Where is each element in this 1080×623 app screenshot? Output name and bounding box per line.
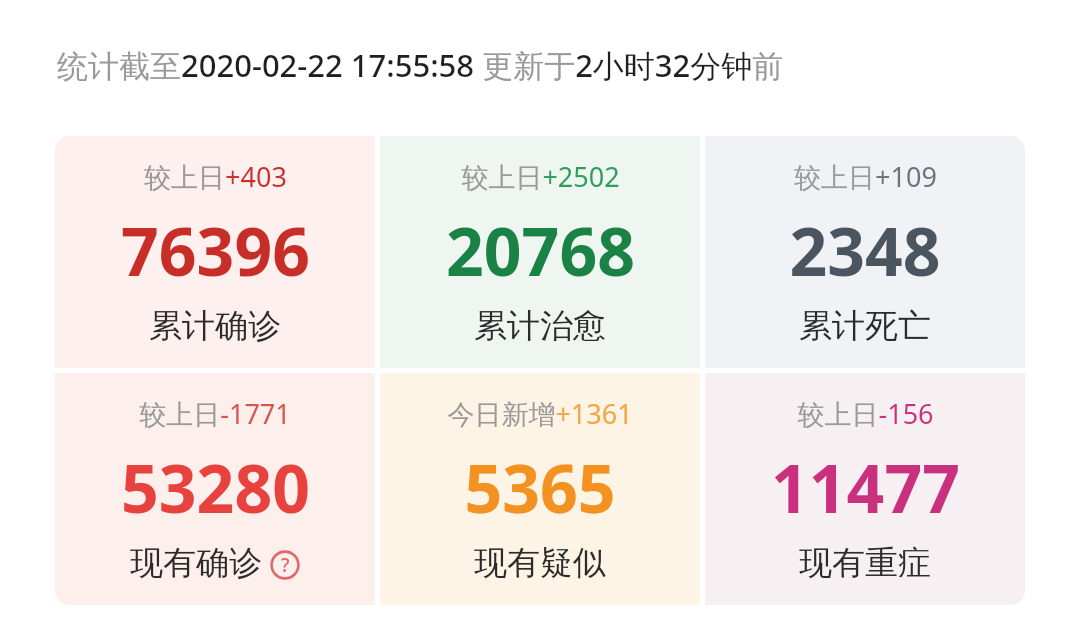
staticText: 5365 [464,442,616,532]
staticText: 现有确诊 [130,542,262,584]
staticText: 现有疑似 [474,542,606,584]
button[interactable]: 说明 [270,550,300,580]
staticText: ? [281,552,290,578]
staticText: 今日新增+1361 [447,395,633,432]
staticText: 11477 [771,442,960,532]
staticText: 较上日+2502 [461,158,620,195]
button[interactable]: 较上日-156 [705,373,1025,605]
staticText: 较上日-156 [797,395,934,432]
staticText: 累计确诊 [149,305,281,347]
staticText: 较上日-1771 [139,395,291,432]
staticText: 76396 [121,205,310,295]
staticText: 统计截至2020-02-22 17:55:58 更新于2小时32分钟前 [57,44,784,86]
staticText: 现有重症 [799,542,931,584]
staticText: 较上日+109 [794,158,937,195]
staticText: 累计死亡 [799,305,931,347]
staticText: 累计治愈 [474,305,606,347]
button[interactable]: 较上日-1771 [55,373,375,605]
button[interactable]: 今日新增+1361 [380,373,700,605]
staticText: 20768 [446,205,635,295]
staticText: 2348 [789,205,941,295]
staticText: 较上日+403 [144,158,287,195]
button[interactable]: 较上日+403 [55,136,375,368]
staticText: 53280 [121,442,310,532]
button[interactable]: 较上日+2502 [380,136,700,368]
button[interactable]: 较上日+109 [705,136,1025,368]
